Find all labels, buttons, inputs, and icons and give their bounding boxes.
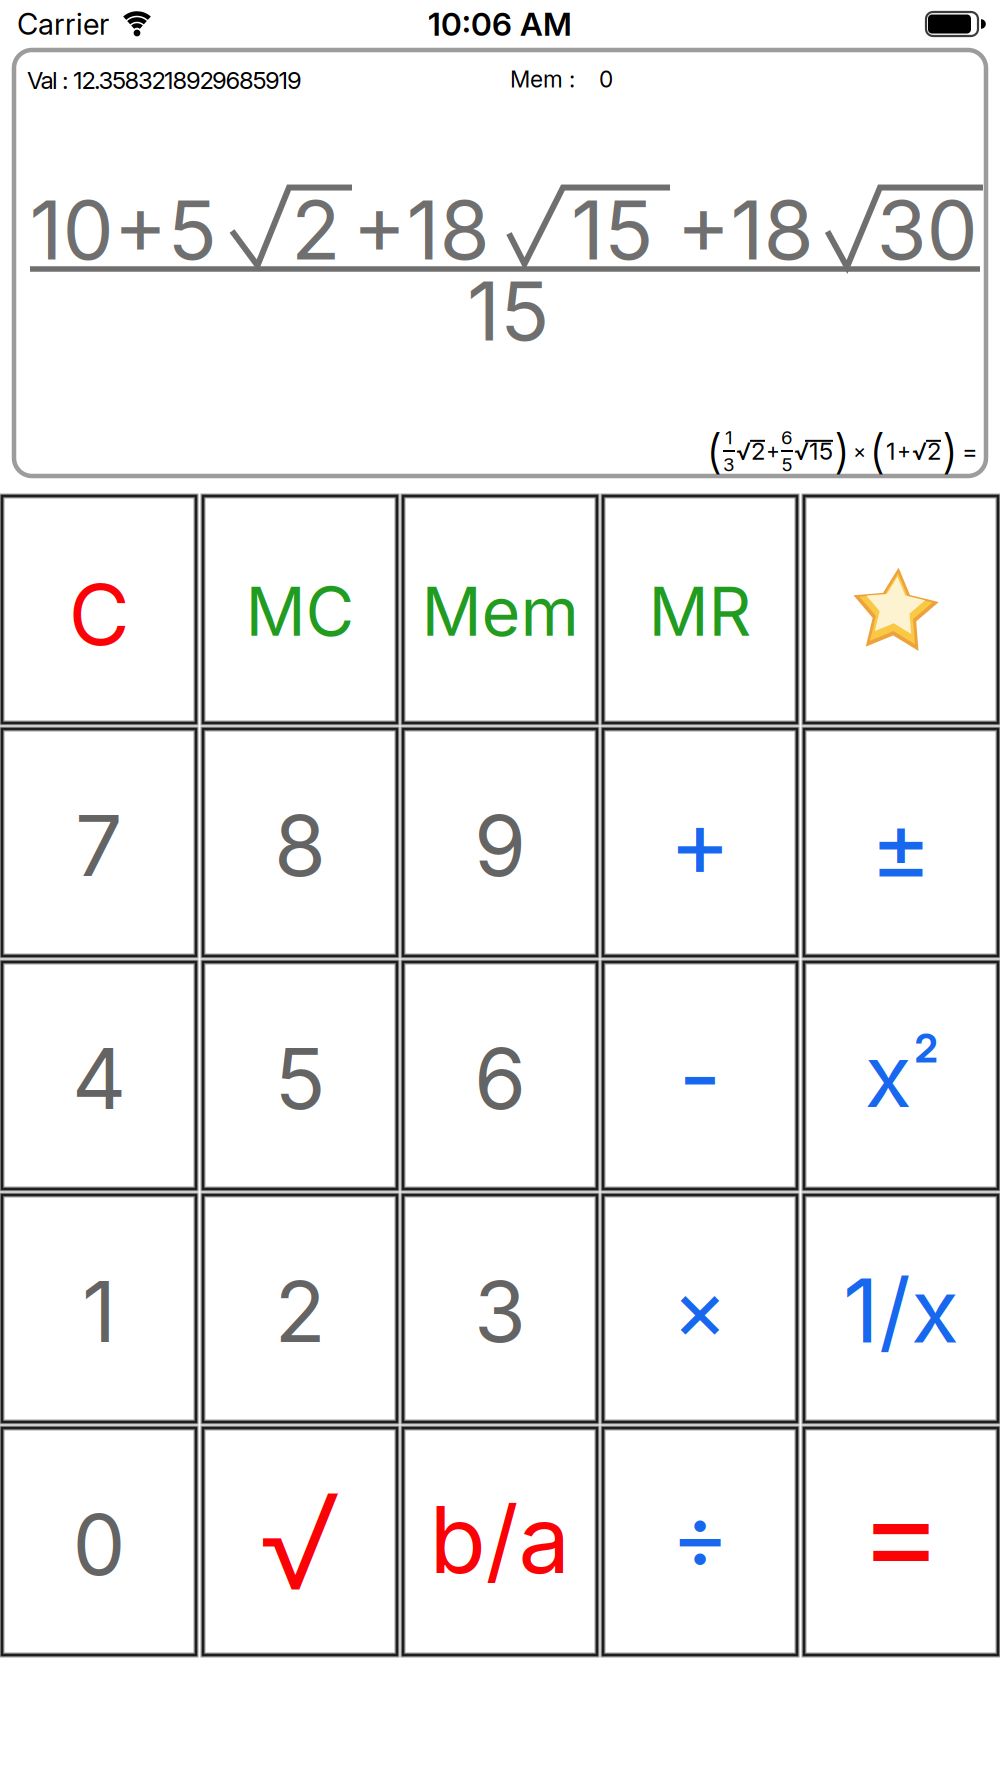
staticText: +18 [676, 182, 813, 278]
staticText: × [672, 1259, 728, 1358]
staticText: √2 [736, 437, 765, 465]
staticText: +18 [352, 182, 489, 278]
button[interactable]: 7 [2, 729, 196, 956]
staticText: 1 [725, 426, 733, 448]
button[interactable] [804, 496, 998, 723]
staticText: × [853, 439, 866, 463]
staticText: C [68, 565, 129, 664]
staticText: ) [834, 423, 850, 479]
button[interactable]: + [603, 729, 797, 956]
button[interactable]: - [603, 962, 797, 1189]
button[interactable]: 1/x [804, 1195, 998, 1422]
staticText: ( [869, 423, 885, 479]
button[interactable]: 1 [2, 1195, 196, 1422]
button[interactable]: √ [203, 1428, 397, 1655]
staticText: MR [648, 572, 751, 651]
staticText: 8 [274, 796, 326, 895]
staticText: 15 [571, 182, 653, 278]
staticText: x [864, 1024, 911, 1127]
staticText: Mem [421, 572, 578, 651]
staticText: 2 [291, 182, 341, 278]
staticText: 1 [886, 437, 896, 465]
button[interactable]: MC [203, 496, 397, 723]
button[interactable]: MR [603, 496, 797, 723]
staticText: 10+5 [29, 182, 216, 278]
staticText: + [669, 787, 731, 897]
staticText: MC [245, 572, 354, 651]
staticText: 6 [474, 1029, 526, 1128]
staticText: Carrier [17, 7, 109, 41]
staticText: 5 [274, 1029, 325, 1128]
button[interactable]: C [2, 496, 196, 723]
staticText: ( [706, 423, 722, 479]
staticText: ) [942, 423, 958, 479]
staticText: ÷ [670, 1483, 729, 1588]
staticText: 2 [274, 1262, 325, 1361]
staticText: - [678, 1020, 721, 1130]
staticText: 30 [876, 182, 977, 278]
button[interactable]: 2 [203, 1195, 397, 1422]
staticText: 0 [599, 66, 613, 93]
staticText: 6 [781, 426, 793, 448]
button[interactable]: ÷ [603, 1428, 797, 1655]
button[interactable]: ± [804, 729, 998, 956]
button[interactable]: 8 [203, 729, 397, 956]
button[interactable]: 0 [2, 1428, 196, 1655]
staticText: ± [870, 790, 932, 900]
staticText: 1/x [843, 1259, 959, 1362]
staticText: 5 [781, 453, 792, 475]
staticText: 7 [75, 796, 123, 895]
staticText: 4 [72, 1029, 126, 1128]
button[interactable]: b/a [403, 1428, 597, 1655]
staticText: 3 [723, 453, 735, 475]
staticText: √2 [912, 437, 941, 465]
staticText: √15 [794, 437, 833, 465]
button[interactable]: Mem [403, 496, 597, 723]
staticText: Mem : [510, 66, 575, 93]
staticText: Val : 12.3583218929685919 [27, 66, 302, 94]
button[interactable]: 5 [203, 962, 397, 1189]
staticText: 3 [474, 1262, 526, 1361]
button[interactable]: × [603, 1195, 797, 1422]
button[interactable]: 3 [403, 1195, 597, 1422]
staticText: b/a [429, 1485, 570, 1594]
staticText: 0 [72, 1495, 125, 1594]
button[interactable]: 9 [403, 729, 597, 956]
staticText: = [962, 437, 978, 465]
staticText: 2 [914, 1026, 937, 1071]
staticText: 1 [82, 1262, 116, 1361]
staticText: + [897, 438, 911, 464]
staticText: = [859, 1459, 942, 1606]
button[interactable]: 6 [403, 962, 597, 1189]
staticText: √ [259, 1464, 340, 1619]
button[interactable]: 4 [2, 962, 196, 1189]
button[interactable]: x [804, 962, 998, 1189]
staticText: 9 [474, 796, 526, 895]
button[interactable]: = [804, 1428, 998, 1655]
staticText: 10:06 AM [428, 5, 572, 43]
staticText: 15 [467, 263, 549, 359]
staticText: + [766, 438, 780, 464]
